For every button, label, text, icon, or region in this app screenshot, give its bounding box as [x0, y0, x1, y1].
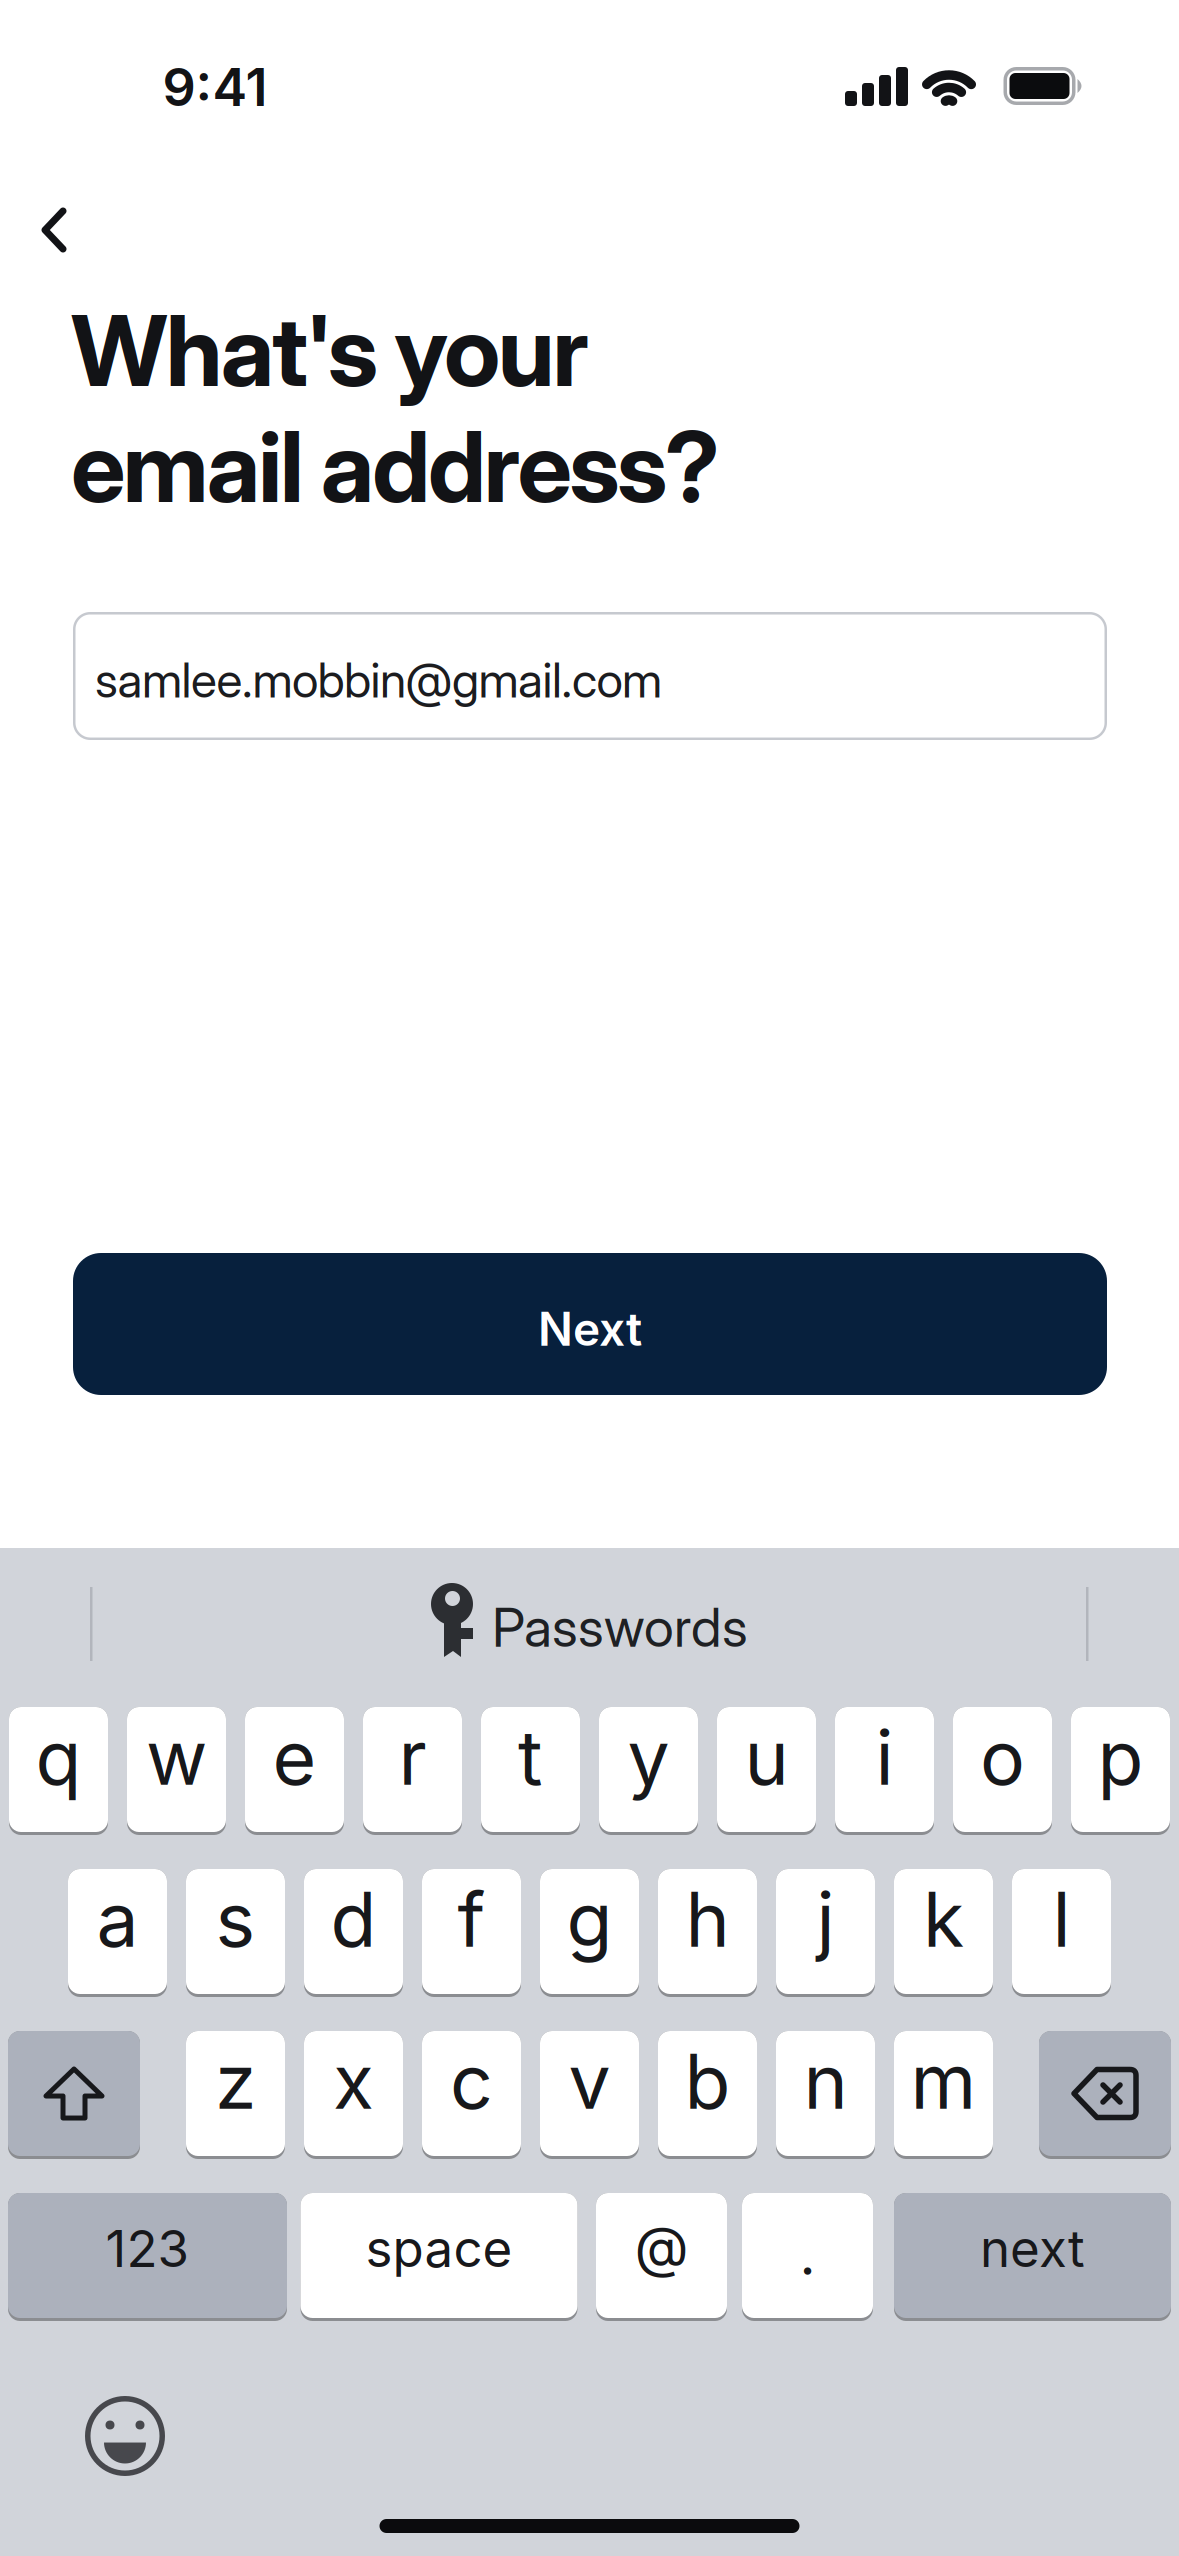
- button[interactable]: d: [304, 1869, 403, 1997]
- button[interactable]: space: [300, 2193, 577, 2321]
- button[interactable]: j: [776, 1869, 875, 1997]
- staticText: a: [96, 1874, 138, 1965]
- staticText: 9:41: [162, 55, 267, 118]
- staticText: t: [518, 1712, 543, 1803]
- button[interactable]: p: [1071, 1707, 1170, 1835]
- button[interactable]: i: [835, 1707, 934, 1835]
- button[interactable]: b: [658, 2031, 757, 2159]
- button[interactable]: v: [540, 2031, 639, 2159]
- staticText: o: [980, 1712, 1025, 1803]
- button[interactable]: Shift: [8, 2031, 140, 2159]
- button[interactable]: f: [422, 1869, 521, 1997]
- staticText: p: [1097, 1712, 1143, 1803]
- staticText: n: [803, 2036, 847, 2127]
- staticText: e: [272, 1712, 316, 1803]
- staticText: s: [215, 1874, 255, 1965]
- staticText: email address?: [71, 408, 720, 525]
- button[interactable]: u: [717, 1707, 816, 1835]
- button[interactable]: x: [304, 2031, 403, 2159]
- staticText: b: [684, 2036, 730, 2127]
- button[interactable]: samlee.mobbin@gmail.com: [73, 612, 1107, 740]
- button[interactable]: z: [186, 2031, 285, 2159]
- staticText: Passwords: [492, 1594, 748, 1660]
- staticText: j: [816, 1874, 834, 1965]
- staticText: 123: [105, 2218, 189, 2279]
- staticText: next: [980, 2218, 1085, 2279]
- button[interactable]: h: [658, 1869, 757, 1997]
- button[interactable]: n: [776, 2031, 875, 2159]
- staticText: k: [923, 1874, 964, 1965]
- staticText: d: [330, 1874, 376, 1965]
- staticText: g: [566, 1874, 612, 1965]
- staticText: r: [398, 1712, 426, 1803]
- staticText: samlee.mobbin@gmail.com: [95, 651, 662, 709]
- staticText: z: [215, 2036, 256, 2127]
- staticText: i: [875, 1712, 893, 1803]
- button[interactable]: Emoji: [85, 2396, 165, 2476]
- staticText: l: [1052, 1874, 1070, 1965]
- button[interactable]: .: [742, 2193, 873, 2321]
- staticText: x: [333, 2036, 374, 2127]
- staticText: .: [799, 2221, 815, 2288]
- staticText: w: [146, 1712, 207, 1803]
- staticText: space: [365, 2218, 512, 2279]
- staticText: u: [744, 1712, 788, 1803]
- staticText: f: [457, 1874, 485, 1965]
- staticText: v: [568, 2036, 610, 2127]
- staticText: q: [35, 1712, 81, 1803]
- button[interactable]: next: [894, 2193, 1171, 2321]
- staticText: h: [685, 1874, 729, 1965]
- button[interactable]: Back: [25, 200, 85, 260]
- button[interactable]: y: [599, 1707, 698, 1835]
- button[interactable]: m: [894, 2031, 993, 2159]
- staticText: y: [627, 1712, 669, 1803]
- button[interactable]: c: [422, 2031, 521, 2159]
- button[interactable]: e: [245, 1707, 344, 1835]
- button[interactable]: l: [1012, 1869, 1111, 1997]
- button[interactable]: t: [481, 1707, 580, 1835]
- button[interactable]: o: [953, 1707, 1052, 1835]
- button[interactable]: Passwords: [0, 1581, 1179, 1661]
- button[interactable]: a: [68, 1869, 167, 1997]
- staticText: What's your: [71, 292, 588, 409]
- button[interactable]: w: [127, 1707, 226, 1835]
- button[interactable]: r: [363, 1707, 462, 1835]
- button[interactable]: Delete: [1039, 2031, 1171, 2159]
- button[interactable]: @: [596, 2193, 727, 2321]
- button[interactable]: s: [186, 1869, 285, 1997]
- button[interactable]: g: [540, 1869, 639, 1997]
- button[interactable]: Next: [73, 1253, 1107, 1395]
- staticText: c: [450, 2036, 493, 2127]
- staticText: m: [910, 2036, 976, 2127]
- button[interactable]: 123: [8, 2193, 287, 2321]
- button[interactable]: q: [9, 1707, 108, 1835]
- button[interactable]: k: [894, 1869, 993, 1997]
- staticText: @: [634, 2213, 688, 2280]
- staticText: Next: [538, 1301, 642, 1357]
